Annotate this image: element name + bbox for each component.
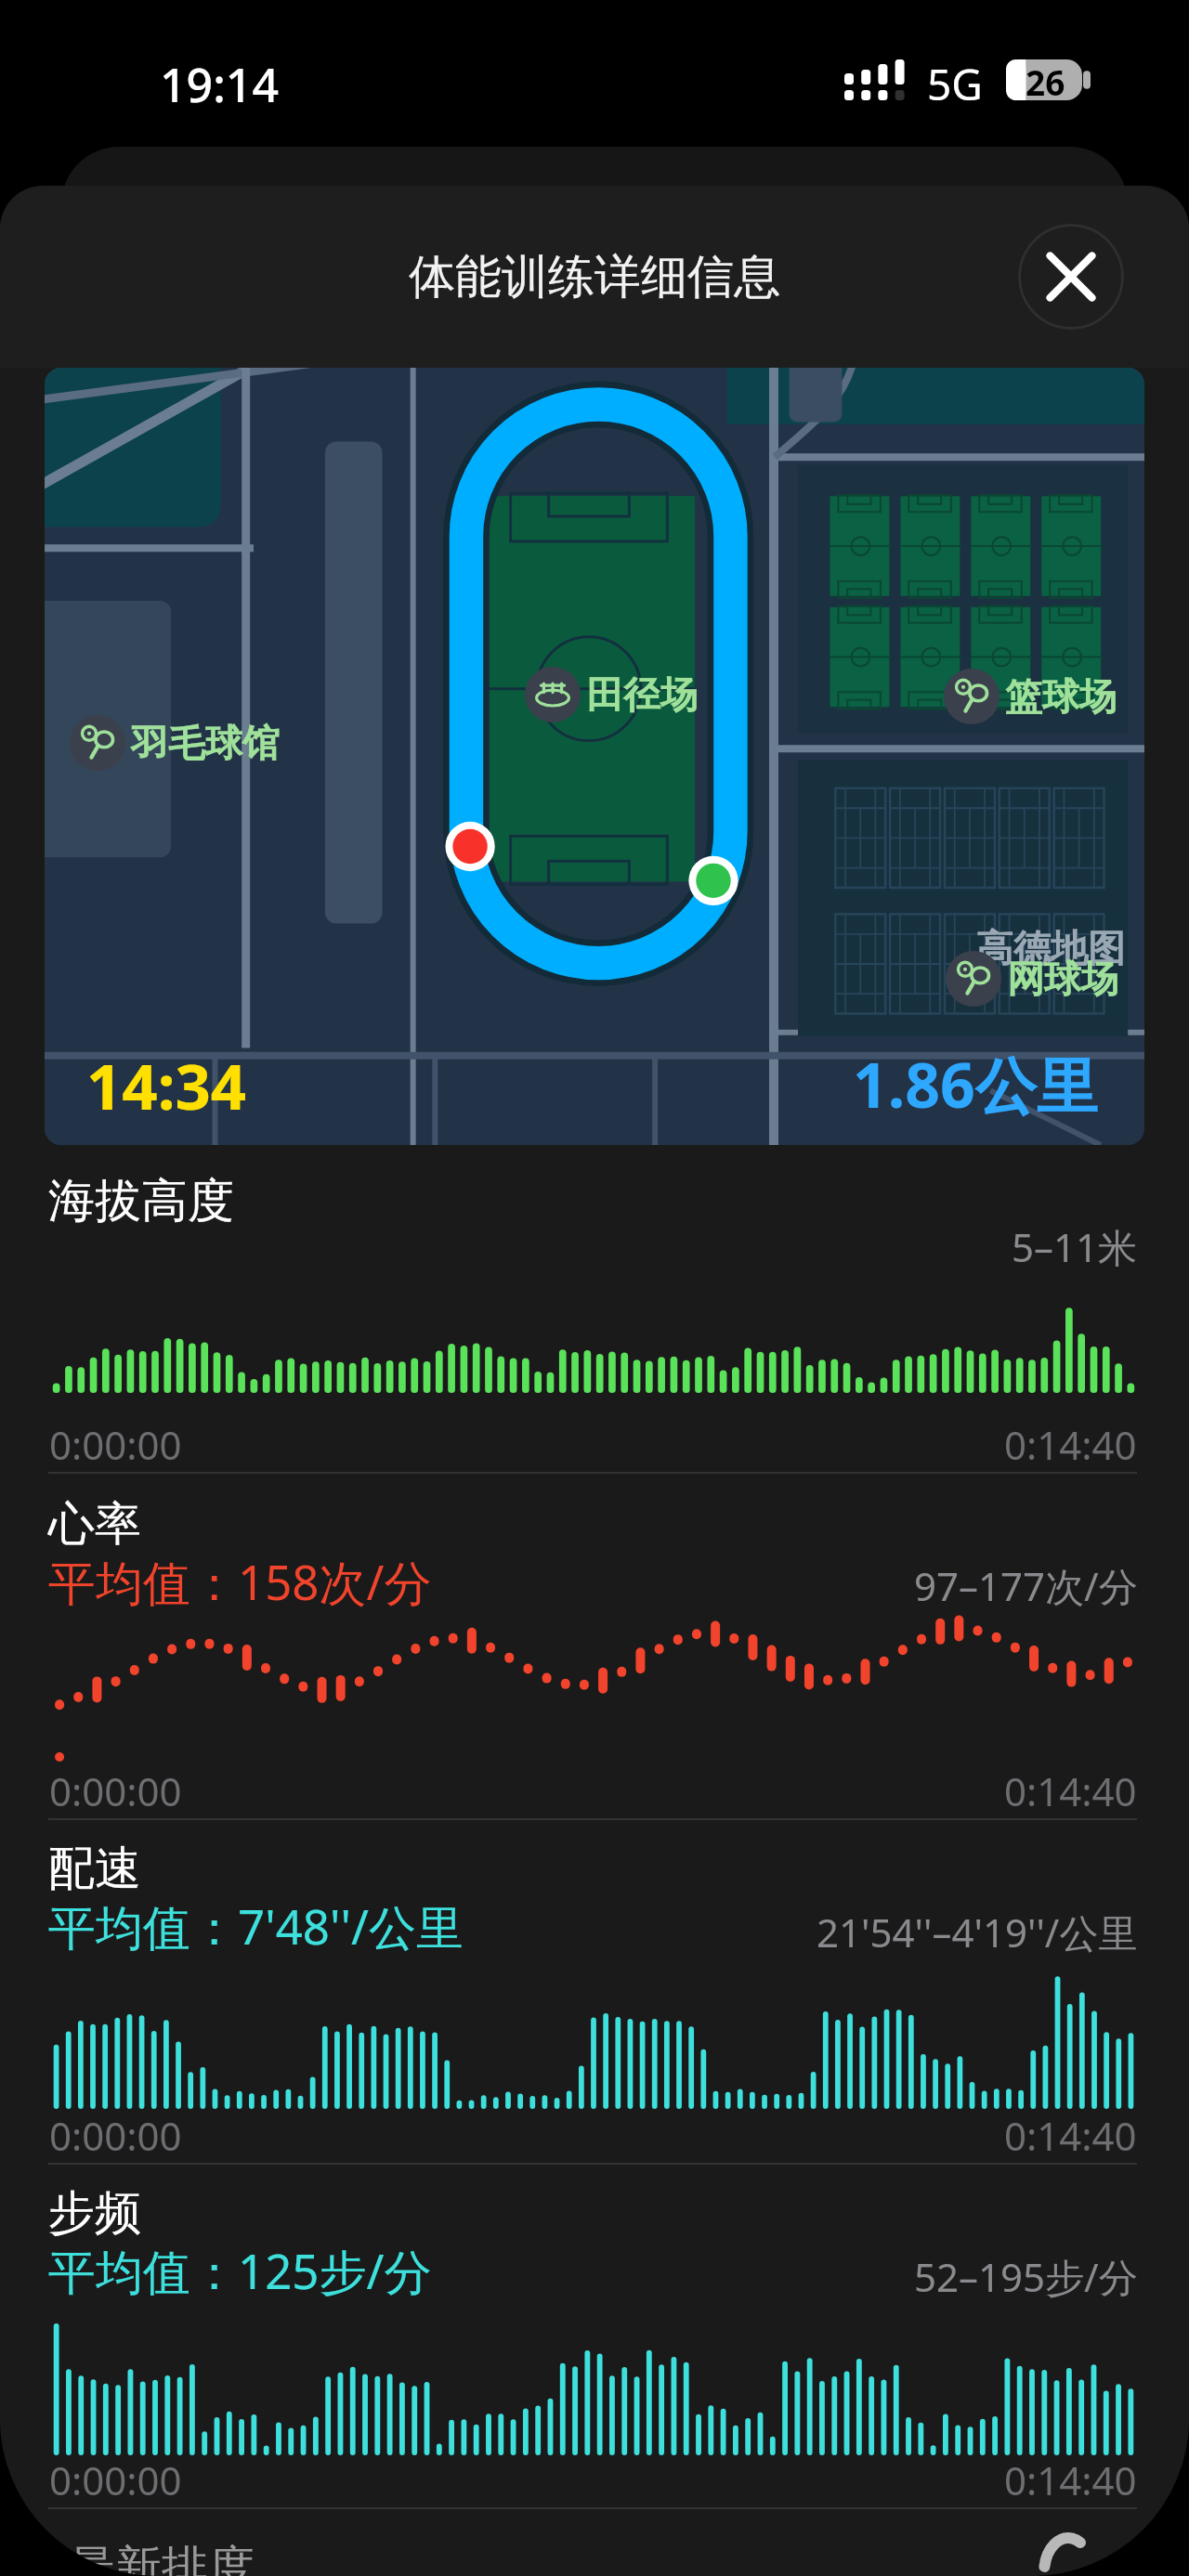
staticText: 26: [1026, 59, 1065, 99]
staticText: 田径场: [586, 671, 698, 718]
staticText: 0:14:40: [1004, 2109, 1137, 2162]
staticText: 0:00:00: [49, 1764, 182, 1817]
staticText: 最新排度: [69, 2539, 255, 2576]
staticText: 高德地图: [976, 925, 1125, 971]
staticText: 0:00:00: [49, 1418, 182, 1471]
staticText: 0:00:00: [49, 2109, 182, 2162]
button[interactable]: 运动轨迹地图: [45, 368, 1144, 1145]
staticText: 5G: [927, 55, 983, 113]
staticText: 心率: [48, 1495, 141, 1554]
staticText: 0:00:00: [49, 2453, 182, 2506]
staticText: 网球场: [1007, 956, 1118, 1002]
staticText: 14:34: [86, 1043, 247, 1127]
staticText: 21'54''–4'19''/公里: [817, 1906, 1138, 1958]
staticText: 1.86公里: [853, 1042, 1098, 1125]
staticText: 羽毛球馆: [131, 720, 280, 766]
staticText: 5–11米: [1012, 1220, 1138, 1273]
staticText: 平均值：158次/分: [48, 1549, 432, 1614]
staticText: 体能训练详细信息: [409, 248, 780, 306]
staticText: 0:14:40: [1004, 2453, 1137, 2506]
staticText: 19:14: [160, 53, 279, 116]
staticText: 篮球场: [1005, 673, 1117, 720]
staticText: 52–195步/分: [914, 2250, 1138, 2303]
staticText: 步频: [48, 2184, 141, 2243]
staticText: 配速: [48, 1840, 141, 1898]
staticText: 97–177次/分: [914, 1559, 1138, 1612]
staticText: 0:14:40: [1004, 1418, 1137, 1471]
staticText: 平均值：7'48''/公里: [48, 1893, 464, 1958]
button[interactable]: 关闭: [1018, 224, 1124, 330]
staticText: 海拔高度: [48, 1172, 234, 1230]
staticText: 0:14:40: [1004, 1764, 1137, 1817]
staticText: 平均值：125步/分: [48, 2238, 432, 2303]
